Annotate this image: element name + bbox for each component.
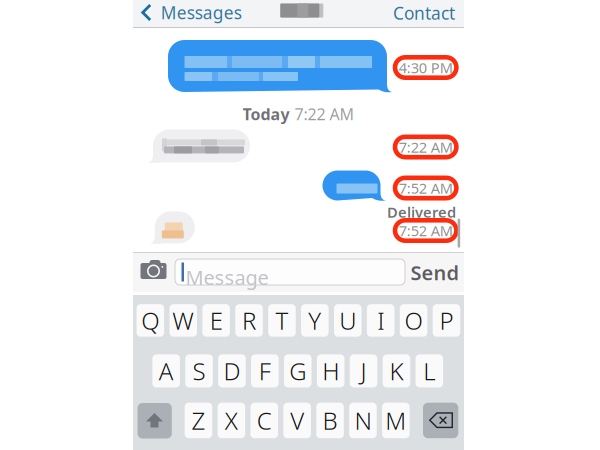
button[interactable]: D <box>218 354 246 387</box>
staticText: P <box>439 304 453 336</box>
button[interactable]: O <box>400 304 427 337</box>
button[interactable]: Y <box>301 304 329 337</box>
button[interactable]: F <box>251 354 279 387</box>
staticText: E <box>210 304 223 336</box>
staticText: Today <box>242 103 289 125</box>
button[interactable]: Camera <box>140 257 167 281</box>
button[interactable]: J <box>350 354 377 387</box>
staticText: C <box>257 404 272 436</box>
button[interactable]: K <box>383 354 410 387</box>
staticText: O <box>405 304 423 336</box>
button[interactable]: H <box>317 354 344 387</box>
staticText: K <box>389 355 403 387</box>
staticText: 7:22 AM <box>294 103 354 125</box>
button[interactable]: G <box>284 354 311 387</box>
button[interactable]: W <box>169 304 197 337</box>
staticText: W <box>172 304 194 336</box>
staticText: Contact <box>393 1 455 24</box>
staticText: 7:52 AM <box>399 221 453 240</box>
staticText: 7:52 AM <box>399 178 453 198</box>
button[interactable]: A <box>152 354 180 387</box>
staticText: Messages <box>161 1 242 24</box>
button[interactable]: V <box>283 403 311 438</box>
staticText: H <box>322 355 339 387</box>
button[interactable]: B <box>316 403 344 438</box>
button[interactable]: C <box>250 403 278 438</box>
button[interactable]: L <box>416 354 443 387</box>
button[interactable]: E <box>202 304 230 337</box>
staticText: V <box>290 404 304 436</box>
staticText: S <box>193 355 206 387</box>
button[interactable]: S <box>185 354 213 387</box>
button[interactable]: T <box>268 304 296 337</box>
button[interactable]: Messages <box>141 0 261 24</box>
staticText: R <box>242 304 256 336</box>
staticText: Delivered <box>387 202 456 222</box>
button[interactable]: X <box>218 403 245 438</box>
staticText: Q <box>141 304 159 336</box>
button[interactable]: Delete <box>423 403 458 438</box>
staticText: T <box>275 304 288 336</box>
staticText: D <box>223 355 240 387</box>
staticText: A <box>159 355 174 387</box>
staticText: X <box>225 404 238 436</box>
staticText: Message <box>185 264 268 291</box>
staticText: 7:22 AM <box>399 137 453 157</box>
staticText: Y <box>308 304 321 336</box>
staticText: M <box>385 404 406 436</box>
button[interactable]: U <box>334 304 361 337</box>
staticText: Send <box>410 259 459 286</box>
staticText: F <box>259 355 271 387</box>
staticText: Z <box>191 404 205 436</box>
staticText: N <box>354 404 371 436</box>
staticText: I <box>377 304 384 336</box>
button[interactable]: N <box>349 403 377 438</box>
button[interactable]: Contact <box>377 1 455 25</box>
staticText: U <box>339 304 356 336</box>
button[interactable]: Z <box>185 403 212 438</box>
staticText: J <box>360 355 366 387</box>
button[interactable]: Shift <box>137 403 172 438</box>
button[interactable]: P <box>433 304 460 337</box>
staticText: 4:30 PM <box>399 58 453 77</box>
button[interactable]: M <box>382 403 410 438</box>
staticText: B <box>323 404 338 436</box>
button[interactable]: Send <box>408 260 462 284</box>
button[interactable]: R <box>235 304 263 337</box>
button[interactable]: Q <box>137 304 164 337</box>
staticText: G <box>289 355 306 387</box>
staticText: L <box>423 355 435 387</box>
button[interactable]: I <box>367 304 394 337</box>
